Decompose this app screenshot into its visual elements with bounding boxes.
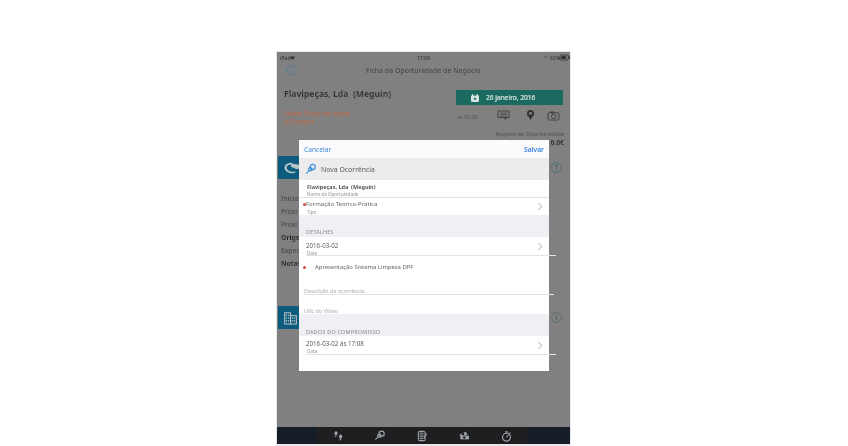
staticText: Cancelar — [304, 145, 332, 154]
button[interactable]: 2016-03-02 — [299, 237, 549, 255]
button[interactable]: Back — [286, 65, 297, 76]
staticText: 2016-03-02 às 17:08 — [306, 339, 364, 347]
staticText: Flavipeças, Lda (Meguin) — [307, 183, 376, 190]
button[interactable]: Visits — [317, 427, 359, 444]
staticText: 26 janeiro, 2016 — [486, 93, 536, 102]
button[interactable]: Payments — [443, 427, 485, 444]
button[interactable]: 26 janeiro, 2016 — [456, 90, 563, 105]
button[interactable]: Cancelar — [304, 140, 332, 158]
staticText: Data — [307, 348, 318, 354]
staticText: Já Compra — [284, 117, 314, 125]
staticText: Flavipeças, Lda (Meguin) — [284, 88, 392, 100]
staticText: 0.0€ — [550, 138, 564, 147]
button[interactable]: Location — [519, 108, 541, 122]
staticText: 63% — [550, 55, 561, 62]
button[interactable]: Nova Ocorrência — [299, 158, 549, 180]
staticText: Inicia — [281, 194, 299, 203]
staticText: Apresentação Sistema Limpeza DPF — [315, 263, 414, 271]
button[interactable]: Upload — [551, 162, 562, 173]
staticText: Nome da Oportunidade — [307, 191, 359, 197]
button[interactable]: Formação Teórico-Prática — [299, 197, 549, 215]
button[interactable]: Descrição da ocorrência — [299, 278, 549, 295]
staticText: Registo de Oportunidade — [495, 130, 564, 138]
button[interactable]: Message — [490, 108, 516, 122]
staticText: 2016-03-02 — [306, 241, 339, 249]
button[interactable]: Documents — [401, 427, 443, 444]
button[interactable] — [278, 306, 322, 329]
staticText: DETALHES — [306, 228, 334, 235]
staticText: Formação Teórico-Prática — [306, 200, 378, 208]
button[interactable]: Occurrences — [359, 427, 401, 444]
staticText: Próxi — [281, 220, 298, 229]
staticText: URL do Vídeo — [304, 307, 338, 314]
button[interactable]: Camera — [542, 108, 564, 122]
staticText: iPad — [280, 55, 291, 62]
staticText: Descrição da ocorrência — [304, 287, 365, 294]
staticText: Visitas Ponto de venda — [284, 109, 350, 117]
staticText: Data — [307, 250, 318, 256]
staticText: Orige — [281, 233, 300, 242]
button[interactable] — [278, 156, 322, 179]
button[interactable]: Apresentação Sistema Limpeza DPF — [299, 255, 549, 278]
button[interactable]: 2016-03-02 às 17:08 — [299, 336, 549, 354]
staticText: Tipo — [307, 209, 317, 215]
button[interactable]: Info — [551, 312, 562, 323]
staticText: Nova Ocorrência — [321, 165, 375, 174]
staticText: Salvar — [524, 145, 544, 154]
button[interactable]: History — [485, 427, 527, 444]
button[interactable]: URL do Vídeo — [299, 295, 549, 314]
staticText: DADOS DO COMPROMISSO — [306, 328, 381, 335]
button[interactable]: Salvar — [524, 140, 544, 158]
staticText: Notas — [281, 259, 302, 268]
staticText: Próxi — [281, 207, 298, 216]
staticText: 17:09 — [417, 55, 430, 62]
button[interactable]: Flavipeças, Lda (Meguin) — [299, 180, 549, 197]
staticText: Ficha da Oportunidade de Negócio — [366, 66, 481, 76]
staticText: Expec — [281, 246, 300, 255]
staticText: às 00:00 — [457, 113, 479, 120]
